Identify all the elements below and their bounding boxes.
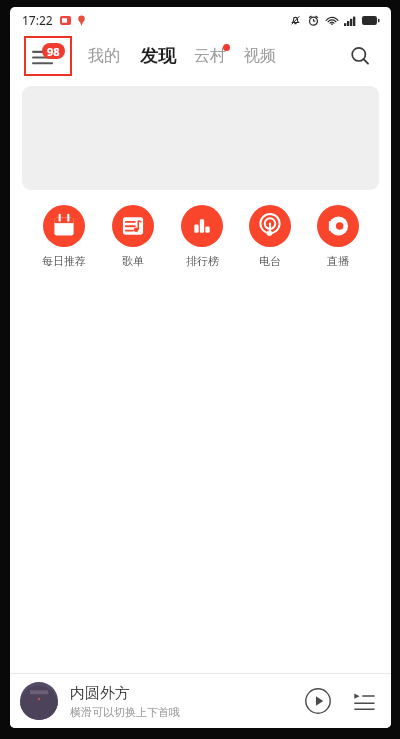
button[interactable]: 每日推荐 <box>38 205 90 268</box>
button[interactable]: Search <box>345 41 375 71</box>
staticText: 我的 <box>88 46 120 66</box>
staticText: 98 <box>47 44 60 59</box>
button[interactable]: Menu <box>24 36 72 76</box>
staticText: 排行榜 <box>186 254 219 268</box>
button[interactable]: 电台 <box>245 205 295 268</box>
button[interactable]: 发现 <box>138 41 178 72</box>
staticText: 内圆外方 <box>70 684 130 703</box>
button[interactable]: 云村 <box>192 42 228 70</box>
button[interactable]: Album art <box>20 682 58 720</box>
staticText: 电台 <box>259 254 281 268</box>
button[interactable]: 视频 <box>242 42 278 70</box>
staticText: 云村 <box>194 46 226 66</box>
staticText: 每日推荐 <box>42 254 86 268</box>
staticText: 歌单 <box>122 254 144 268</box>
button[interactable]: 内圆外方 <box>70 684 301 719</box>
staticText: 视频 <box>244 46 276 66</box>
staticText: 横滑可以切换上下首哦 <box>70 705 180 719</box>
staticText: 发现 <box>140 45 176 68</box>
button[interactable]: 直播 <box>313 205 363 268</box>
staticText: 直播 <box>327 254 349 268</box>
button[interactable]: Play <box>301 684 335 718</box>
button[interactable]: 排行榜 <box>177 205 227 268</box>
button[interactable]: 我的 <box>86 42 122 70</box>
staticText: 17:22 <box>22 12 53 28</box>
button[interactable]: 歌单 <box>108 205 158 268</box>
button[interactable]: Playlist <box>349 686 379 716</box>
